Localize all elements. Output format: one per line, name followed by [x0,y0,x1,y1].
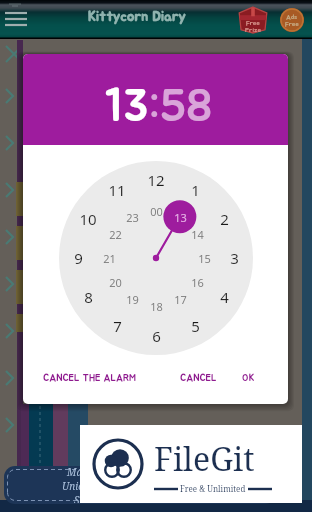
staticText: FileGit [154,437,255,481]
staticText: 21 [103,251,116,266]
staticText: 15 [198,251,211,266]
staticText: 17 [174,292,187,307]
staticText: 1 [191,180,200,200]
staticText: 4 [220,287,229,307]
staticText: 18 [150,299,163,314]
staticText: 16 [191,275,204,290]
staticText: 19 [126,292,139,307]
staticText: 12 [147,170,165,190]
staticText: 9 [74,248,83,268]
button[interactable]: CANCEL THE ALARM [37,367,142,389]
staticText: 20 [109,275,122,290]
staticText: 22 [109,227,122,242]
button[interactable]: Ads Free [280,8,304,32]
staticText: Set [74,493,89,503]
staticText: Kittycorn Diary [88,10,186,24]
staticText: 11 [108,180,126,200]
staticText: Prize [245,26,261,33]
staticText: Free & Unlimited [178,483,248,494]
staticText: Free [246,19,260,26]
staticText: 6 [152,326,161,346]
button[interactable]: Open navigation menu [2,5,30,33]
button[interactable]: 58 [160,85,213,130]
staticText: : [149,85,160,130]
staticText: Ads [286,13,298,20]
staticText: 2 [220,209,229,229]
staticText: 14 [191,227,204,242]
staticText: 00 [150,204,163,219]
staticText: 10 [79,209,97,229]
staticText: 8 [84,287,93,307]
button[interactable]: 13 [105,85,149,130]
staticText: 3 [230,248,239,268]
staticText: OK [242,373,255,383]
button[interactable]: Magic [4,466,276,504]
staticText: 7 [113,316,122,336]
staticText: CANCEL THE ALARM [43,373,136,383]
staticText: 5 [191,316,200,336]
staticText: CANCEL [180,373,217,383]
staticText: 13 [174,210,187,225]
staticText: Magic [67,466,96,479]
button[interactable]: Free Prize [238,6,268,33]
button[interactable]: CANCEL [174,367,223,389]
button[interactable]: OK [236,367,261,389]
staticText: Unicorn [62,479,100,493]
staticText: 23 [126,210,139,225]
staticText: Free [285,20,299,27]
